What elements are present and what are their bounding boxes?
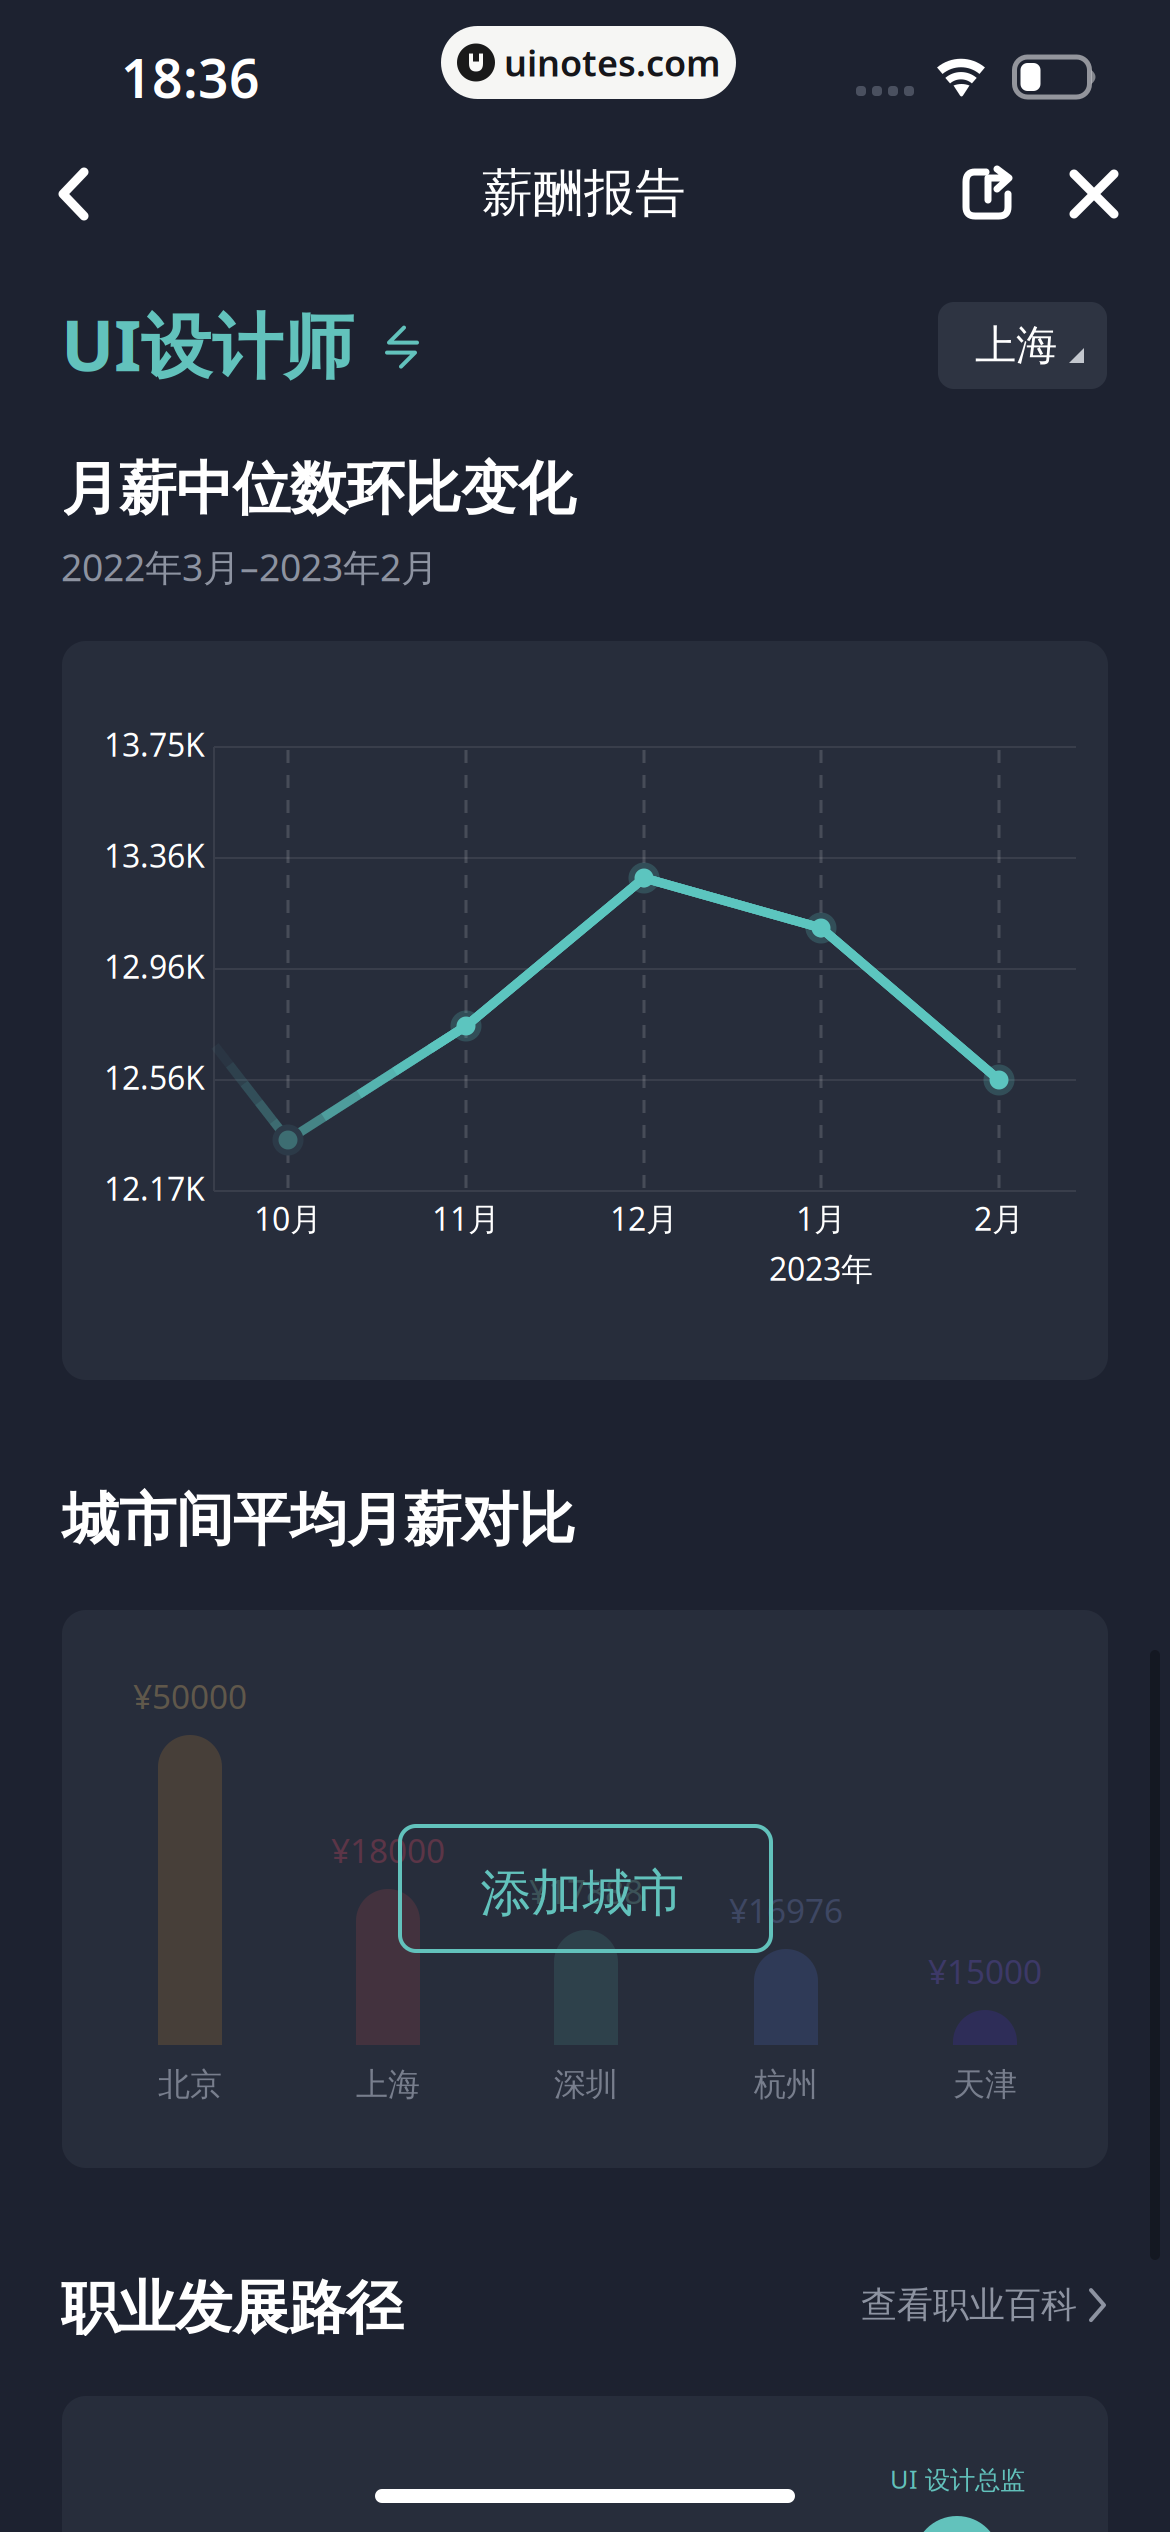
staticText: 2022年3月–2023年2月	[61, 542, 438, 592]
staticText: 天津	[953, 2065, 1017, 2104]
staticText: 深圳	[554, 2065, 618, 2104]
staticText: 13.36K	[104, 834, 205, 876]
staticText: 查看职业百科	[861, 2283, 1077, 2327]
staticText: ¥15000	[928, 1949, 1042, 1993]
staticText: ¥18000	[331, 1828, 445, 1872]
staticText: UI 设计总监	[890, 2462, 1025, 2496]
staticText: 12月	[610, 1197, 678, 1239]
staticText: 月薪中位数环比变化	[62, 454, 575, 524]
button[interactable]: 上海	[938, 302, 1107, 389]
staticText: 1月	[796, 1197, 846, 1239]
staticText: 上海	[975, 320, 1057, 371]
staticText: 12.96K	[104, 945, 205, 987]
staticText: 薪酬报告	[482, 162, 686, 224]
staticText: 18:36	[121, 42, 260, 113]
staticText: 2023年	[769, 1247, 873, 1289]
button[interactable]: UI设计师	[61, 297, 420, 391]
staticText: 北京	[158, 2065, 222, 2104]
button[interactable]: Back	[25, 136, 122, 252]
staticText: UI设计师	[61, 297, 354, 391]
staticText: 12.17K	[104, 1167, 205, 1209]
staticText: 13.75K	[104, 723, 205, 765]
staticText: 12.56K	[104, 1056, 205, 1098]
button[interactable]: 查看职业百科	[855, 2267, 1112, 2343]
staticText: 杭州	[754, 2065, 818, 2104]
button[interactable]: 添加城市	[400, 1826, 771, 1951]
staticText: 2月	[974, 1197, 1024, 1239]
staticText: 添加城市	[480, 1862, 684, 1925]
button[interactable]: Share	[936, 144, 1038, 244]
staticText: 11月	[432, 1197, 500, 1239]
staticText: 10月	[254, 1197, 322, 1239]
staticText: ¥17888	[529, 1869, 643, 1913]
staticText: ¥50000	[133, 1674, 247, 1718]
staticText: 职业发展路径	[61, 2273, 403, 2343]
staticText: 城市间平均月薪对比	[62, 1485, 575, 1555]
button[interactable]: Close	[1042, 144, 1146, 244]
staticText: uinotes.com	[504, 39, 721, 86]
staticText: ¥16976	[729, 1888, 843, 1932]
staticText: 上海	[356, 2065, 420, 2104]
